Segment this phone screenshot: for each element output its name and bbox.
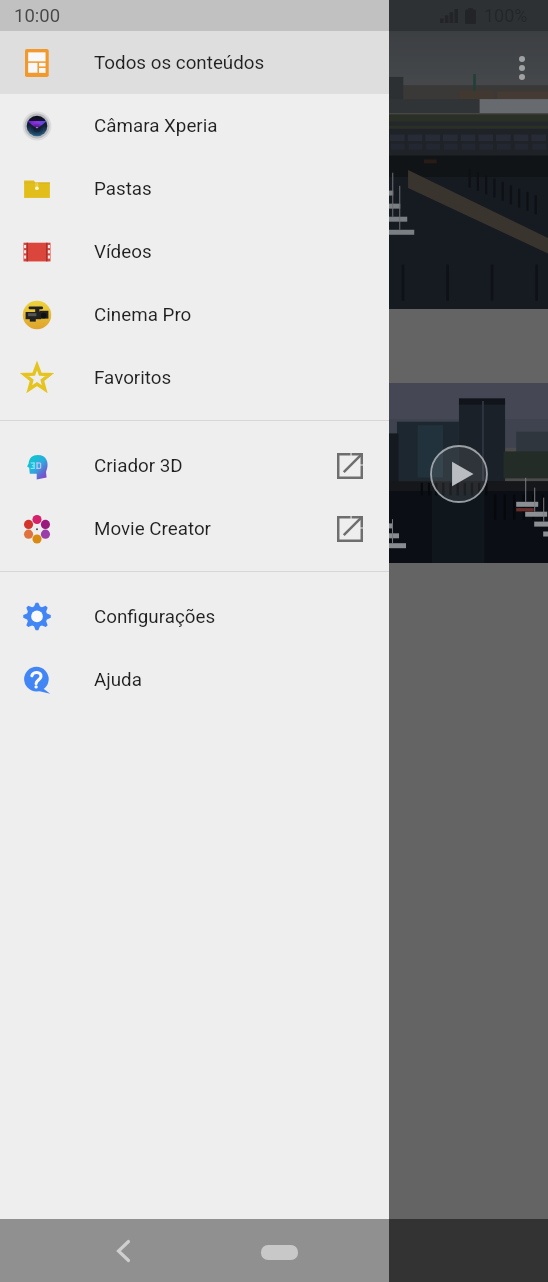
button[interactable]: Back (107, 1235, 139, 1267)
staticText: Vídeos (94, 241, 152, 263)
other: Open Criador 3D (337, 453, 363, 479)
button[interactable]: Movie Creator (0, 497, 389, 560)
staticText: Favoritos (94, 367, 172, 389)
button[interactable]: Pastas (0, 157, 389, 220)
button[interactable]: Vídeos (0, 220, 389, 283)
staticText: Ajuda (94, 669, 142, 691)
button[interactable]: Criador 3D (0, 434, 389, 497)
button[interactable]: Ajuda (0, 648, 389, 711)
staticText: Configurações (94, 606, 216, 628)
button[interactable]: Favoritos (0, 346, 389, 409)
staticText: Movie Creator (94, 518, 211, 540)
button[interactable]: More options (519, 56, 525, 80)
button[interactable]: Play video (430, 445, 488, 503)
button[interactable]: Câmara Xperia (0, 94, 389, 157)
button[interactable]: Cinema Pro (0, 283, 389, 346)
staticText: Pastas (94, 178, 152, 200)
button[interactable]: Configurações (0, 585, 389, 648)
staticText: Cinema Pro (94, 304, 192, 326)
button[interactable]: Todos os conteúdos (0, 31, 389, 94)
staticText: 10:00 (14, 5, 61, 27)
staticText: Criador 3D (94, 455, 183, 477)
staticText: Todos os conteúdos (94, 52, 265, 74)
staticText: Câmara Xperia (94, 115, 218, 137)
staticText: 100% (484, 5, 528, 26)
other: Open Movie Creator (337, 516, 363, 542)
button[interactable]: Home (261, 1245, 298, 1260)
